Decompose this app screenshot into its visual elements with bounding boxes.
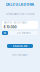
button[interactable]: 24 meses: [9, 31, 38, 35]
staticText: CALCULAR: [12, 44, 27, 48]
staticText: 24 meses: [17, 31, 30, 35]
staticText: CALCULADORA: [5, 2, 34, 7]
staticText: 12: [3, 31, 6, 35]
button[interactable]: CALCULAR: [7, 44, 33, 48]
button[interactable]: 12: [2, 31, 8, 35]
staticText: $ 10.000: [3, 25, 16, 29]
staticText: Ver detalle: [12, 53, 28, 57]
staticText: Simulador de cuota: [6, 12, 34, 16]
button[interactable]: Ver detalle: [0, 53, 40, 57]
staticText: Monto solicitado: [3, 21, 27, 24]
